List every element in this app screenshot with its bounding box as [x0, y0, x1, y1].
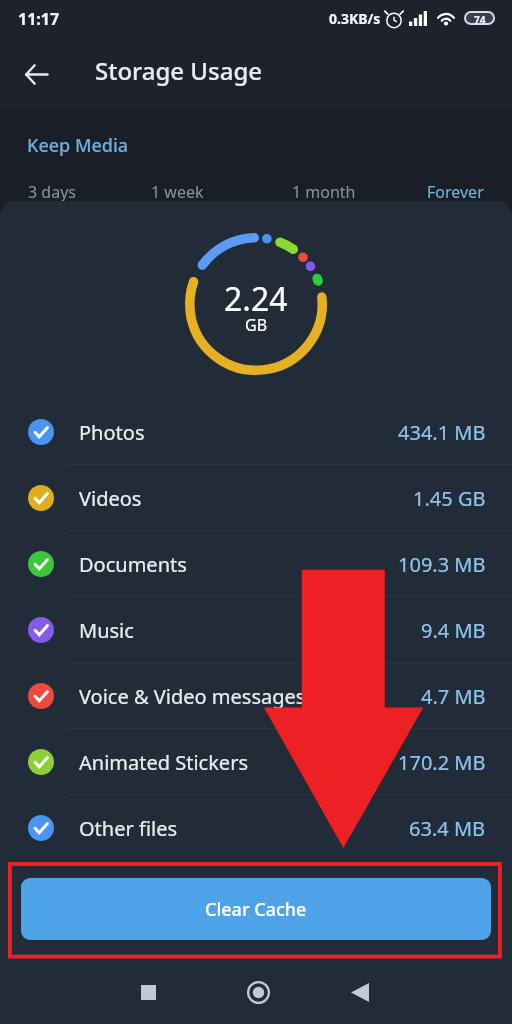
- staticText: 1 month: [292, 181, 356, 203]
- staticText: 4.7 MB: [421, 683, 486, 710]
- button[interactable]: Music: [0, 597, 512, 663]
- button[interactable]: Voice & Video messages: [0, 663, 512, 729]
- staticText: Storage Usage: [95, 54, 263, 87]
- staticText: 2.24: [224, 277, 288, 321]
- staticText: Documents: [79, 551, 187, 578]
- button[interactable]: Animated Stickers: [0, 729, 512, 795]
- staticText: Animated Stickers: [79, 749, 248, 776]
- staticText: Videos: [79, 485, 142, 512]
- staticText: 109.3 MB: [398, 551, 486, 578]
- staticText: Forever: [427, 181, 484, 203]
- button[interactable]: Back: [336, 968, 384, 1016]
- staticText: 1.45 GB: [413, 485, 486, 512]
- staticText: 434.1 MB: [398, 419, 486, 446]
- staticText: 0.3KB/s: [329, 9, 381, 28]
- staticText: GB: [245, 314, 268, 336]
- button[interactable]: Back: [12, 50, 60, 98]
- button[interactable]: Documents: [0, 531, 512, 597]
- staticText: 11:17: [18, 8, 60, 30]
- button[interactable]: Photos: [0, 399, 512, 465]
- staticText: 170.2 MB: [398, 749, 486, 776]
- staticText: 63.4 MB: [409, 815, 486, 842]
- button[interactable]: Home: [234, 968, 282, 1016]
- staticText: 9.4 MB: [421, 617, 486, 644]
- button[interactable]: Recents: [124, 968, 172, 1016]
- staticText: 74: [474, 13, 486, 23]
- staticText: 3 days: [28, 181, 76, 203]
- button[interactable]: Videos: [0, 465, 512, 531]
- staticText: Music: [79, 617, 134, 644]
- staticText: Other files: [79, 815, 177, 842]
- staticText: Clear Cache: [205, 897, 307, 922]
- staticText: Keep Media: [27, 133, 129, 158]
- button[interactable]: Clear Cache: [21, 878, 491, 940]
- staticText: Voice & Video messages: [79, 683, 306, 710]
- staticText: 1 week: [151, 181, 204, 203]
- staticText: Photos: [79, 419, 145, 446]
- button[interactable]: Other files: [0, 795, 512, 861]
